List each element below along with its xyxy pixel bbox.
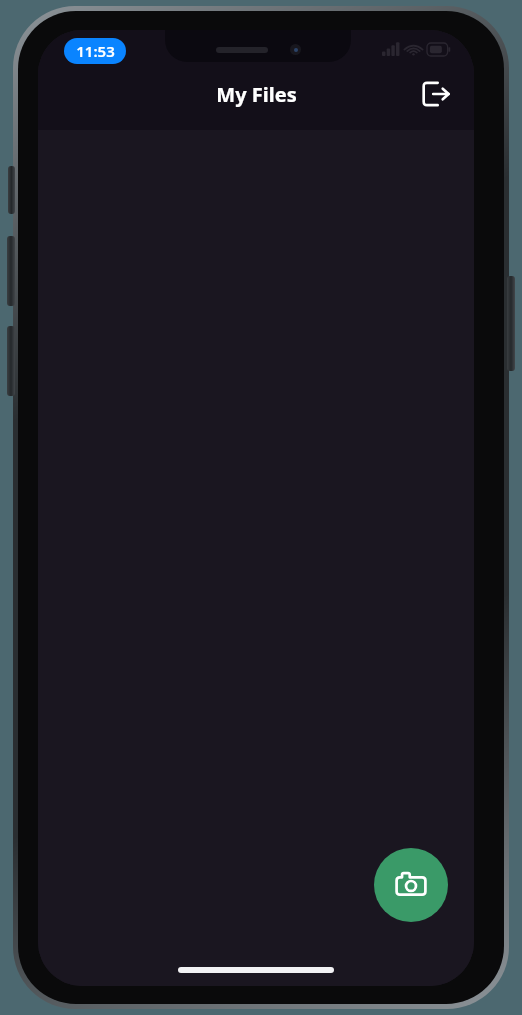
button[interactable]: Log out bbox=[412, 70, 460, 118]
staticText: My Files bbox=[216, 81, 297, 108]
staticText: 11:53 bbox=[76, 41, 115, 61]
button[interactable]: Take photo bbox=[374, 848, 448, 922]
